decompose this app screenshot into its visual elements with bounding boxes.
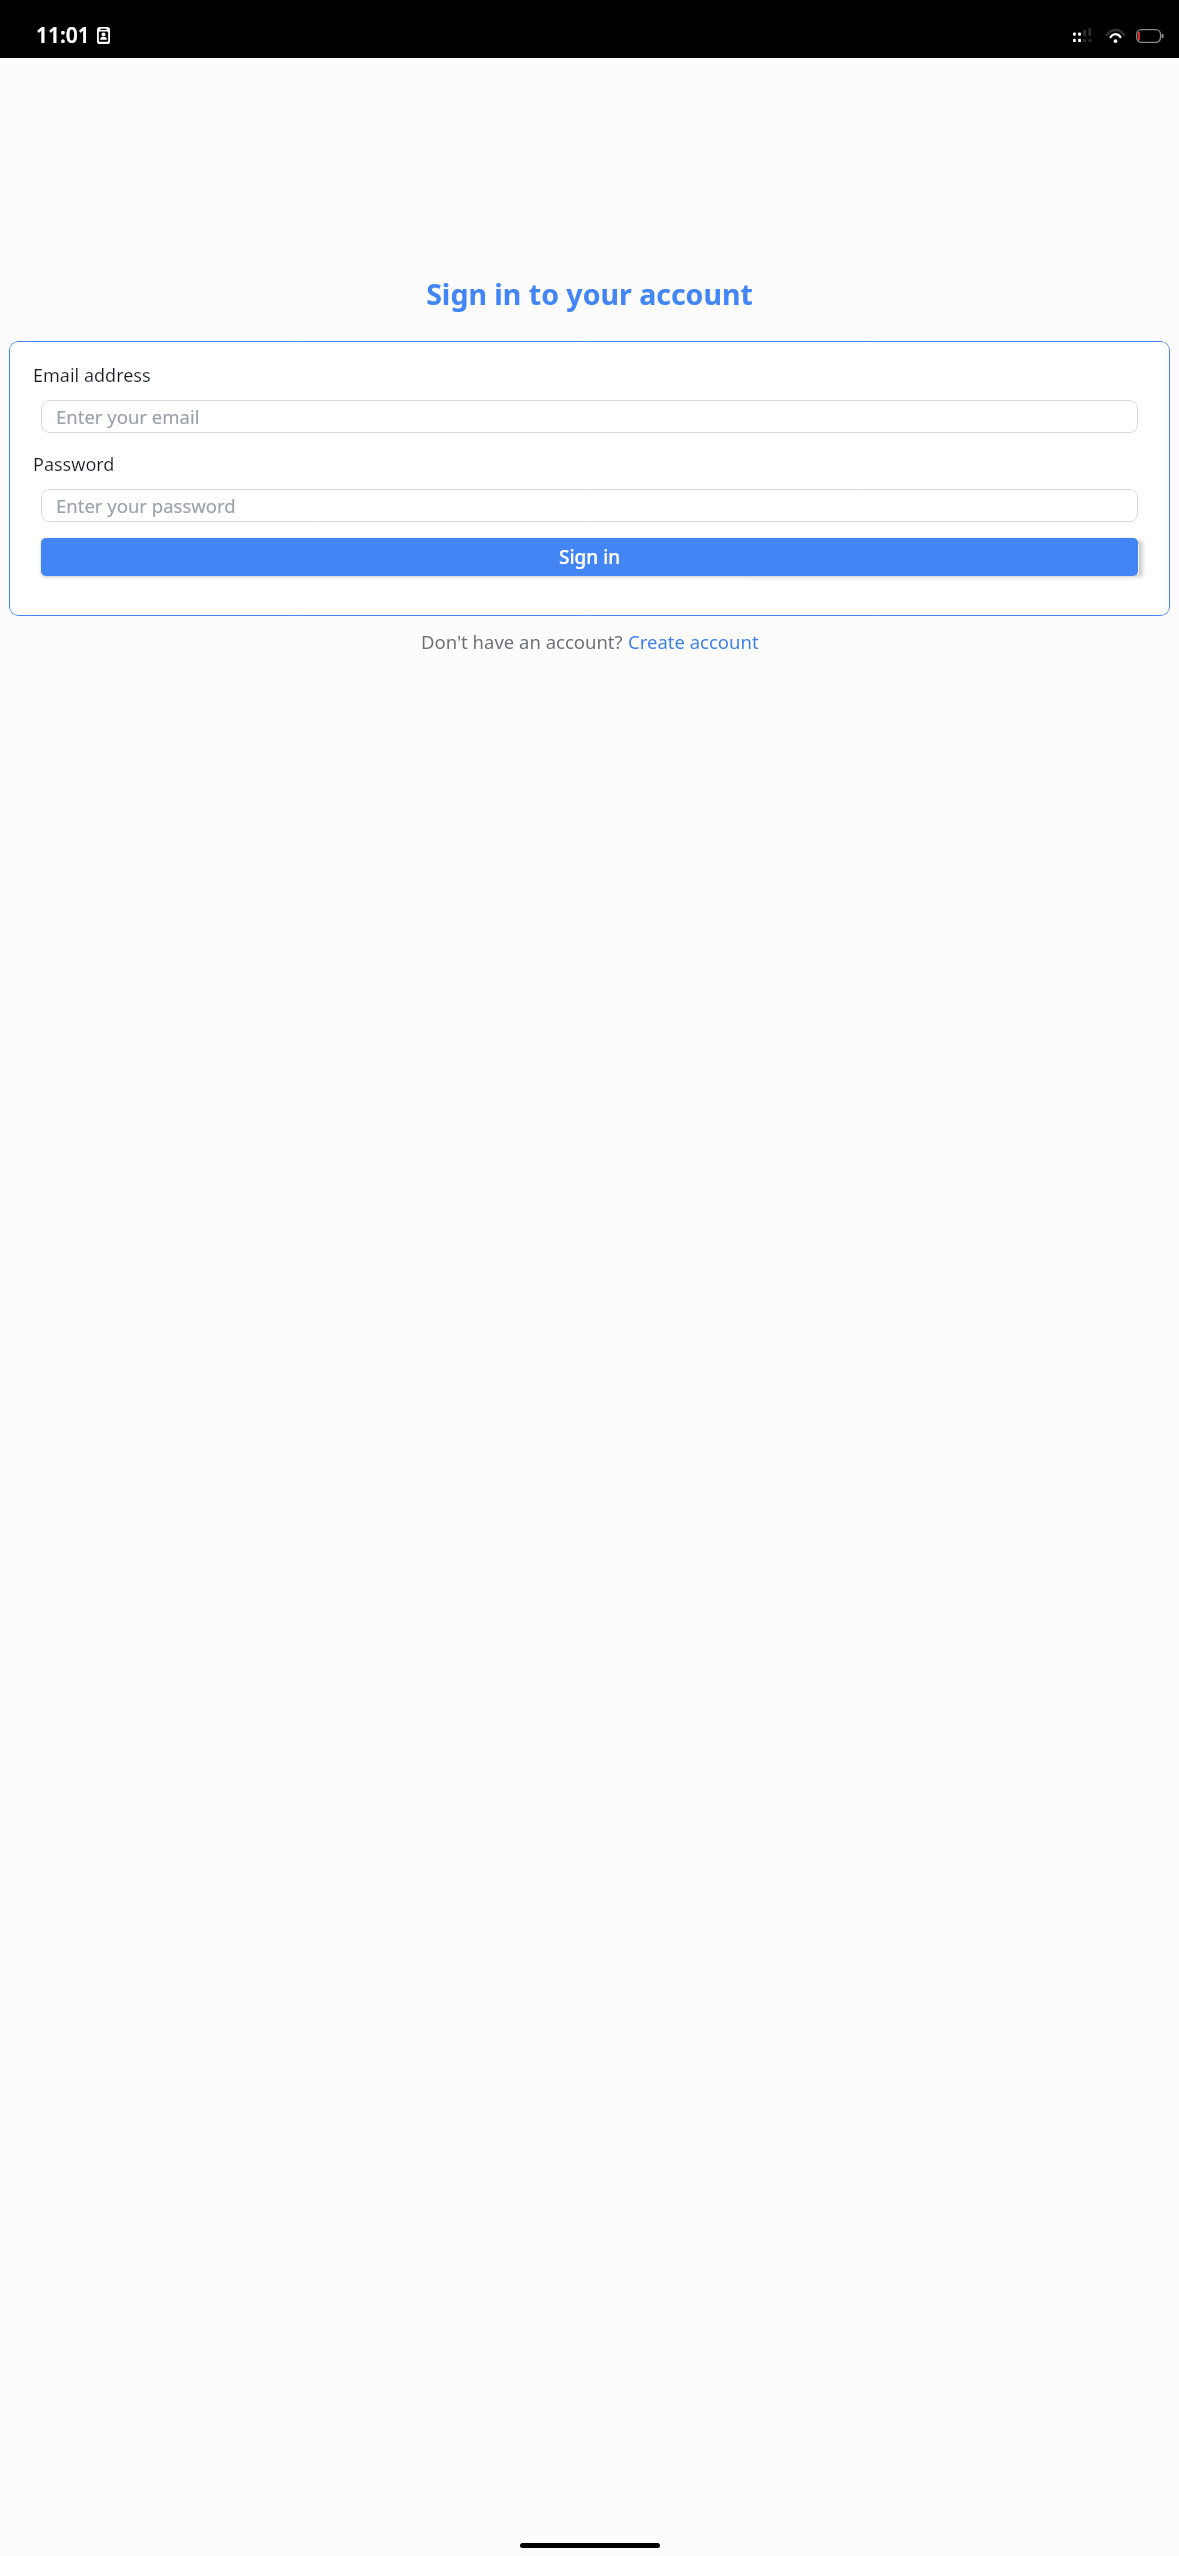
staticText: Email address — [33, 363, 151, 388]
button[interactable]: Email address input — [41, 400, 1138, 433]
staticText: Create account — [628, 629, 759, 654]
staticText: Sign in — [559, 544, 621, 570]
button[interactable]: Create account — [628, 629, 759, 654]
staticText: 11:01 — [36, 21, 90, 50]
staticText: Enter your email — [56, 404, 200, 429]
staticText: Enter your password — [56, 493, 236, 518]
staticText: Password — [33, 452, 115, 477]
staticText: Don't have an account? — [421, 629, 628, 654]
button[interactable]: Password input — [41, 489, 1138, 522]
staticText: Sign in to your account — [426, 275, 753, 314]
button[interactable]: Sign in — [41, 538, 1138, 576]
